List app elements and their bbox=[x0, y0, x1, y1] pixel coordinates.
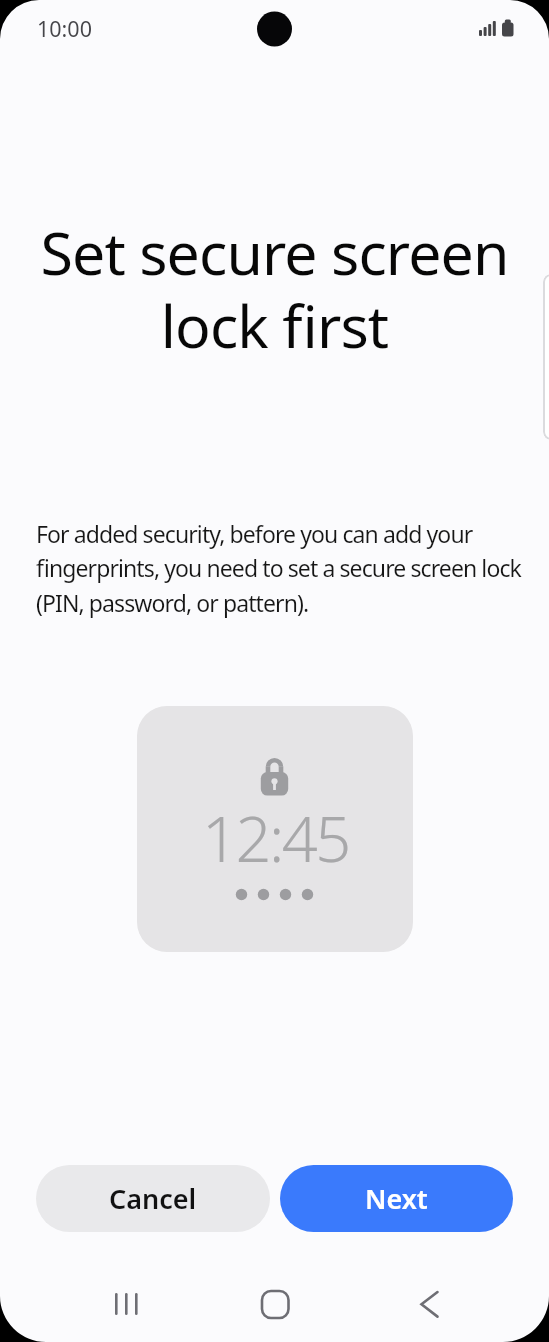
staticText: Next bbox=[365, 1180, 428, 1217]
staticText: Cancel bbox=[109, 1180, 197, 1217]
staticText: 12:45 bbox=[202, 795, 349, 881]
button[interactable]: Cancel bbox=[36, 1165, 270, 1232]
button[interactable] bbox=[245, 1284, 305, 1330]
staticText: 10:00 bbox=[37, 14, 92, 43]
button[interactable] bbox=[400, 1284, 460, 1330]
staticText: For added security, before you can add y… bbox=[36, 518, 521, 619]
button[interactable]: Next bbox=[280, 1165, 513, 1232]
staticText: Set secure screen lock first bbox=[0, 212, 549, 366]
button[interactable] bbox=[96, 1284, 156, 1330]
